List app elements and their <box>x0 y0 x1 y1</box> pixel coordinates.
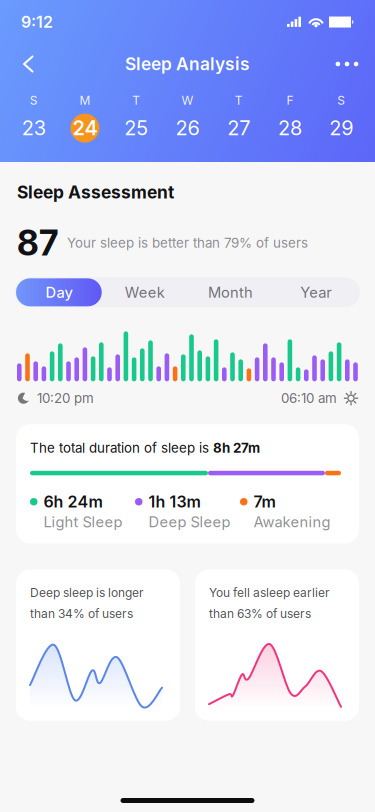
staticText: F <box>287 93 294 108</box>
button[interactable]: Week <box>102 278 188 306</box>
staticText: Light Sleep <box>43 513 122 530</box>
staticText: 10:20 pm <box>37 390 94 406</box>
staticText: You fell asleep earlier <box>209 585 330 600</box>
staticText: Deep Sleep <box>148 513 230 530</box>
staticText: The total duration of sleep is <box>30 440 213 456</box>
button[interactable]: Year <box>273 278 359 306</box>
staticText: 25 <box>124 116 148 140</box>
button[interactable]: S <box>316 92 367 144</box>
button[interactable]: T <box>213 92 264 144</box>
staticText: Sleep Analysis <box>125 54 250 74</box>
button[interactable]: Back <box>8 44 48 84</box>
staticText: M <box>79 93 90 108</box>
staticText: Awakening <box>253 513 330 530</box>
button[interactable]: Day <box>16 278 102 306</box>
staticText: S <box>337 93 345 108</box>
staticText: Week <box>125 284 165 301</box>
staticText: T <box>235 93 243 108</box>
button[interactable]: T <box>111 92 162 144</box>
staticText: 9:12 <box>21 13 53 31</box>
button[interactable]: F <box>264 92 316 144</box>
staticText: Month <box>208 284 253 301</box>
staticText: 06:10 am <box>281 390 337 406</box>
staticText: 23 <box>22 116 46 140</box>
button[interactable]: M <box>59 92 111 144</box>
staticText: S <box>30 93 38 108</box>
staticText: 27 <box>227 116 250 140</box>
staticText: Year <box>300 284 332 301</box>
staticText: Sleep Assessment <box>17 182 174 202</box>
staticText: T <box>132 93 140 108</box>
staticText: Day <box>45 284 72 301</box>
button[interactable]: Month <box>187 278 273 306</box>
staticText: 6h 24m <box>43 492 102 511</box>
staticText: 24 <box>72 116 97 140</box>
button[interactable]: S <box>8 92 59 144</box>
staticText: 87 <box>17 222 58 263</box>
staticText: 8h 27m <box>213 440 260 456</box>
button[interactable]: W <box>162 92 213 144</box>
staticText: 7m <box>253 492 275 511</box>
staticText: Deep sleep is longer <box>30 585 144 600</box>
staticText: 1h 13m <box>148 492 200 511</box>
staticText: W <box>181 93 193 108</box>
button[interactable]: More options <box>327 44 367 84</box>
staticText: 28 <box>278 116 302 140</box>
staticText: than 63% of users <box>209 607 311 621</box>
staticText: than 34% of users <box>30 607 133 621</box>
staticText: 29 <box>329 116 353 140</box>
staticText: Your sleep is better than 79% of users <box>67 235 308 251</box>
staticText: 26 <box>175 116 199 140</box>
